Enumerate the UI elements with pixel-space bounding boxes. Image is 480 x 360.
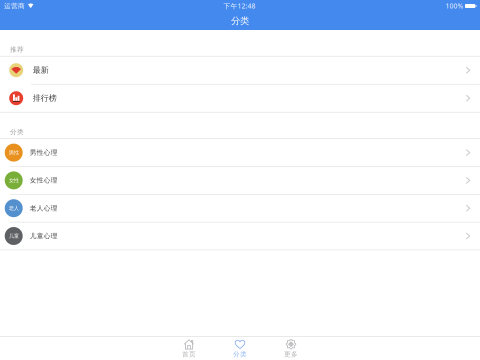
staticText: 推荐 [10, 45, 24, 54]
staticText: 首页 [182, 350, 196, 358]
button[interactable]: 首页 [163, 337, 214, 360]
button[interactable]: 儿童 [0, 222, 480, 250]
staticText: 排行榜 [33, 93, 57, 103]
staticText: 分类 [231, 15, 249, 27]
staticText: 老人心理 [30, 204, 58, 212]
staticText: 儿童 [9, 233, 19, 239]
staticText: 男性 [9, 149, 19, 156]
staticText: 女性 [9, 177, 19, 184]
button[interactable]: 排行榜 [0, 84, 480, 112]
staticText: 老人 [9, 205, 19, 211]
button[interactable]: 更多 [265, 337, 316, 360]
button[interactable]: 男性 [0, 139, 480, 167]
staticText: 儿童心理 [30, 232, 58, 240]
staticText: 分类 [10, 128, 24, 136]
staticText: 运营商 [4, 2, 25, 10]
button[interactable]: 最新 [0, 56, 480, 84]
staticText: 下午12:48 [223, 2, 255, 10]
button[interactable]: 分类 [214, 337, 265, 360]
staticText: 分类 [233, 350, 247, 358]
staticText: 女性心理 [30, 176, 58, 184]
button[interactable]: 女性 [0, 167, 480, 195]
button[interactable]: 老人 [0, 195, 480, 222]
staticText: 100% [445, 2, 463, 10]
staticText: 更多 [284, 350, 298, 358]
staticText: 男性心理 [30, 148, 58, 157]
staticText: 最新 [33, 65, 49, 75]
